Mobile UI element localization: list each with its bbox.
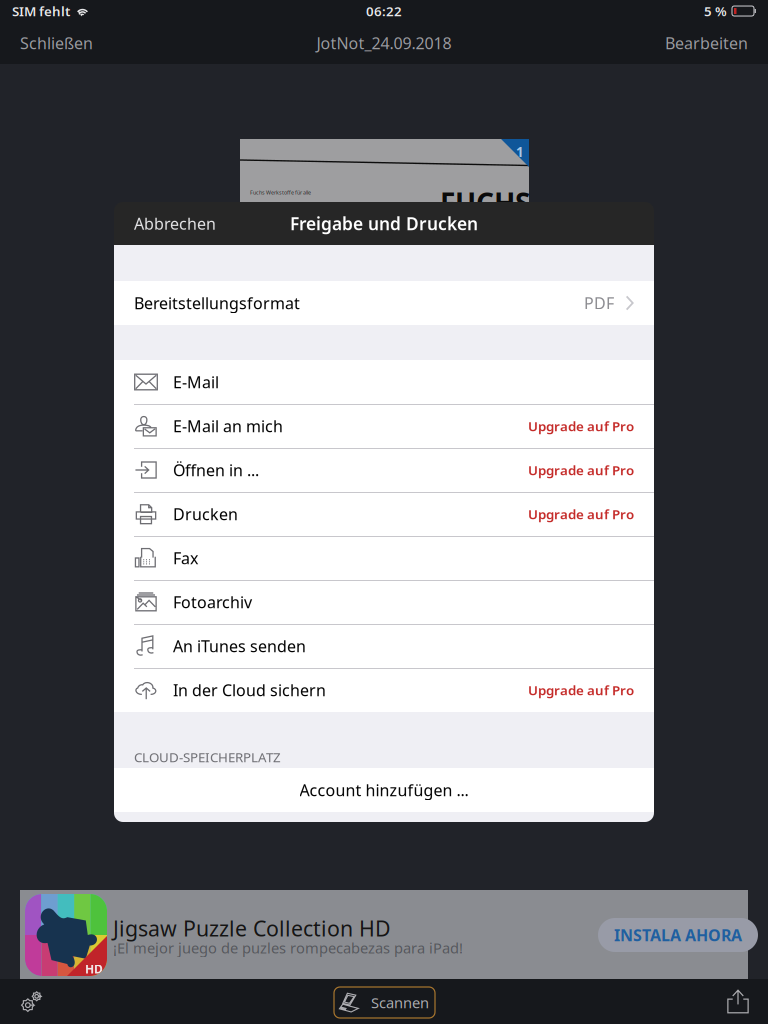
staticText: Öffnen in ... bbox=[173, 459, 259, 481]
button[interactable]: Fotoarchiv bbox=[114, 580, 654, 624]
button[interactable]: Teilen bbox=[716, 979, 760, 1024]
button[interactable]: Abbrechen bbox=[114, 202, 226, 245]
staticText: Upgrade auf Pro bbox=[528, 417, 634, 435]
staticText: Drucken bbox=[173, 503, 238, 525]
staticText: 1 bbox=[516, 143, 524, 161]
button[interactable]: In der Cloud sichern bbox=[114, 668, 654, 712]
button[interactable]: Bearbeiten bbox=[657, 22, 768, 64]
staticText: PDF bbox=[584, 292, 614, 314]
staticText: Freigabe und Drucken bbox=[290, 212, 478, 235]
button[interactable]: HD bbox=[20, 890, 748, 979]
staticText: E-Mail bbox=[173, 371, 219, 393]
button[interactable]: E-Mail an mich bbox=[114, 404, 654, 448]
staticText: JotNot_24.09.2018 bbox=[316, 32, 451, 54]
staticText: Abbrechen bbox=[134, 213, 216, 234]
staticText: Scannen bbox=[371, 993, 429, 1012]
button[interactable]: Einstellungen bbox=[10, 979, 54, 1024]
staticText: FUCHS bbox=[440, 184, 530, 221]
staticText: Upgrade auf Pro bbox=[528, 461, 634, 479]
staticText: Bereitstellungsformat bbox=[134, 292, 300, 314]
staticText: Bearbeiten bbox=[665, 32, 748, 54]
staticText: In der Cloud sichern bbox=[173, 679, 326, 701]
staticText: Fuchs Werkstoffe für alle bbox=[250, 189, 311, 196]
staticText: Account hinzufügen ... bbox=[299, 779, 468, 801]
staticText: CLOUD-SPEICHERPLATZ bbox=[134, 748, 281, 766]
staticText: Fax bbox=[173, 547, 198, 569]
button[interactable]: Account hinzufügen ... bbox=[114, 768, 654, 812]
staticText: INSTALA AHORA bbox=[614, 924, 742, 946]
button[interactable]: Öffnen in ... bbox=[114, 448, 654, 492]
staticText: E-Mail an mich bbox=[173, 415, 283, 437]
staticText: Schließen bbox=[20, 32, 93, 54]
staticText: Upgrade auf Pro bbox=[528, 681, 634, 699]
staticText: 5 % bbox=[704, 2, 727, 20]
staticText: Fotoarchiv bbox=[173, 591, 252, 613]
button[interactable]: Schließen bbox=[0, 22, 101, 64]
staticText: An iTunes senden bbox=[173, 635, 306, 657]
button[interactable]: An iTunes senden bbox=[114, 624, 654, 668]
staticText: 06:22 bbox=[366, 2, 402, 20]
staticText: Upgrade auf Pro bbox=[528, 505, 634, 523]
button[interactable]: Drucken bbox=[114, 492, 654, 536]
staticText: Jigsaw Puzzle Collection HD bbox=[113, 914, 391, 942]
button[interactable]: E-Mail bbox=[114, 360, 654, 404]
staticText: SIM fehlt bbox=[12, 2, 70, 20]
staticText: ¡El mejor juego de puzles rompecabezas p… bbox=[113, 938, 463, 957]
button[interactable]: Bereitstellungsformat bbox=[114, 281, 654, 325]
staticText: HD bbox=[85, 961, 103, 977]
button[interactable]: Scannen bbox=[334, 987, 435, 1018]
button[interactable]: Fax bbox=[114, 536, 654, 580]
